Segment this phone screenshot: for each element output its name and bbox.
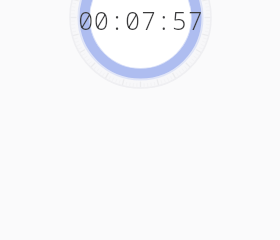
button[interactable]: Timer 00:07:57 <box>0 0 280 240</box>
